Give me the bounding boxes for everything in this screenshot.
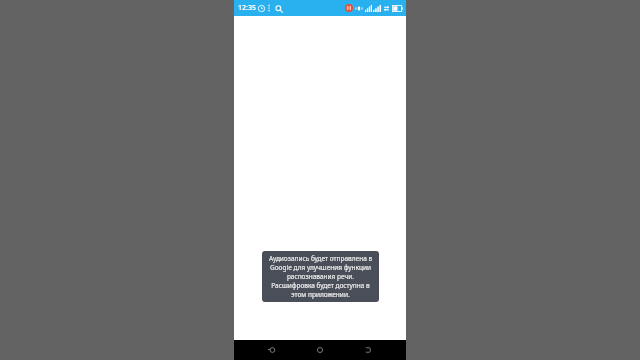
button[interactable]: Home <box>310 340 330 360</box>
button[interactable]: Search <box>273 3 284 14</box>
staticText: 12:35 <box>238 3 256 13</box>
button[interactable]: Аудиозапись будет отправлена в Google дл… <box>262 251 379 302</box>
button[interactable]: Back <box>262 340 282 360</box>
staticText: Аудиозапись будет отправлена в Google дл… <box>267 254 374 299</box>
button[interactable]: Recents <box>358 340 378 360</box>
